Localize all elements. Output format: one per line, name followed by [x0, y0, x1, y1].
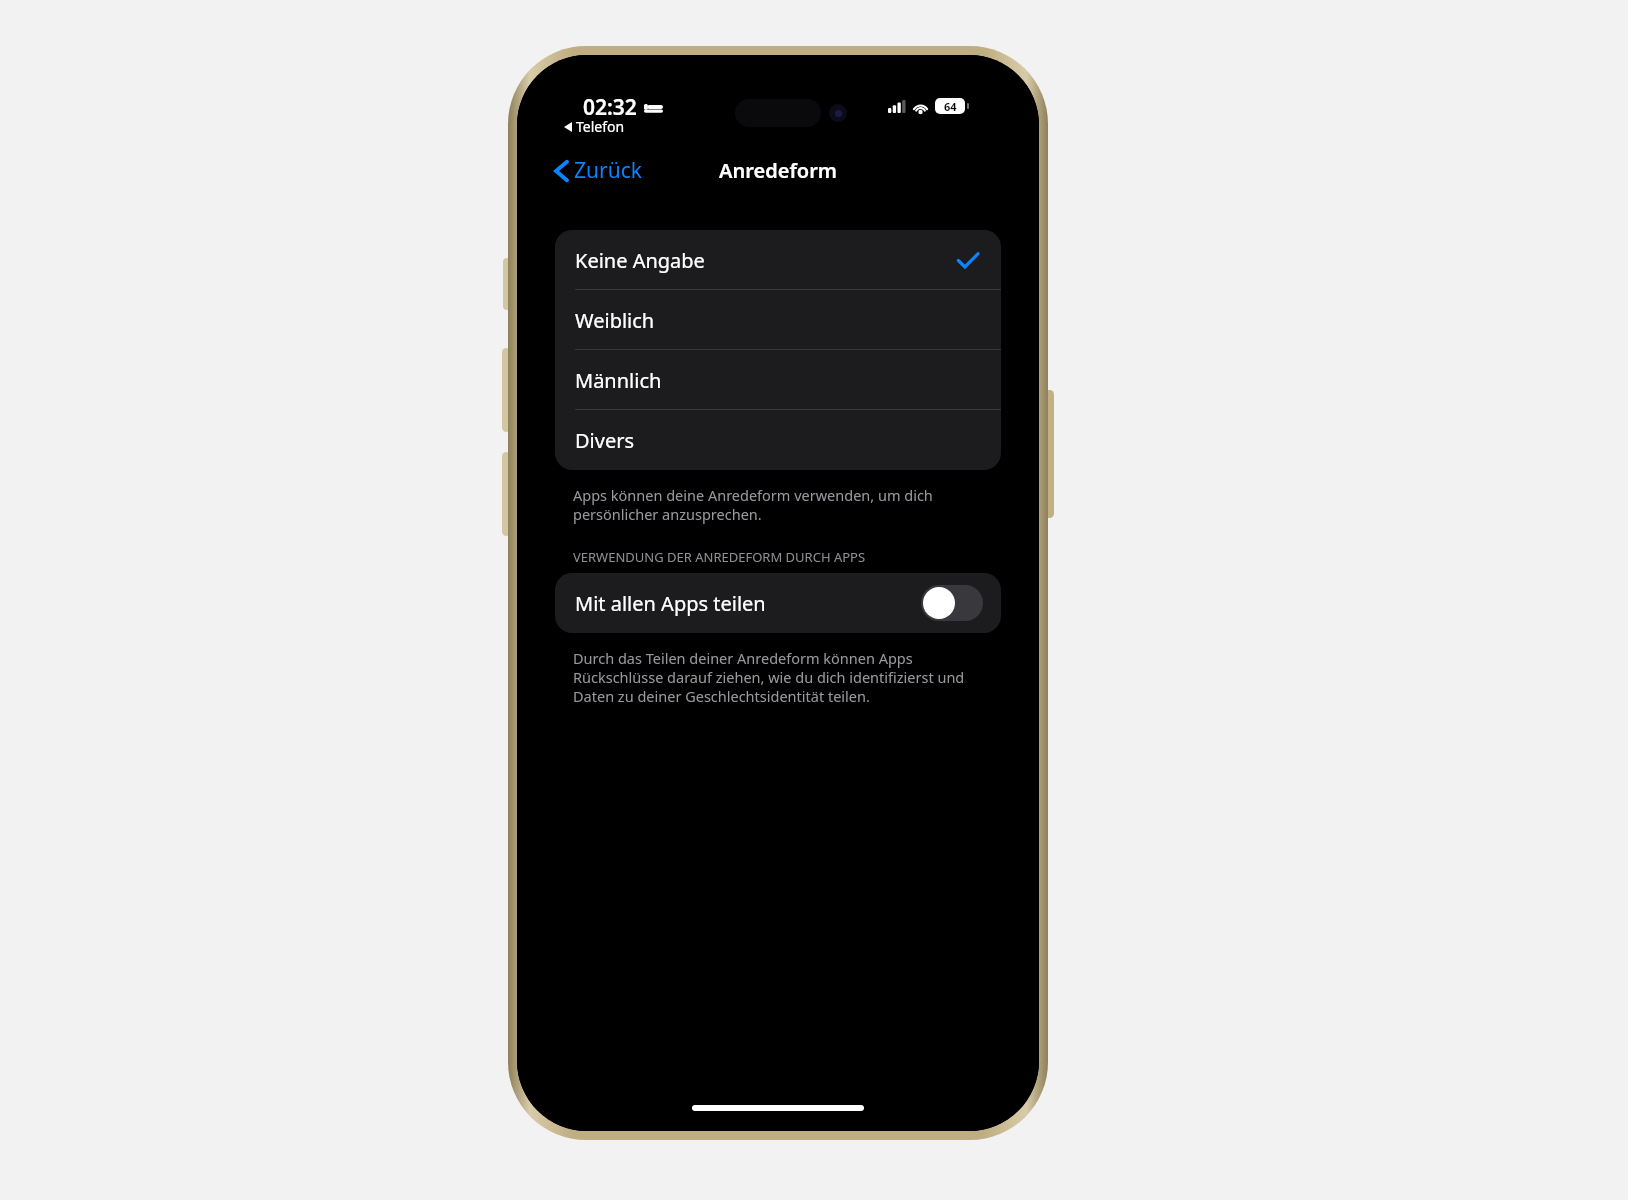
staticText: Mit allen Apps teilen — [575, 590, 766, 617]
staticText: VERWENDUNG DER ANREDEFORM DURCH APPS — [573, 548, 866, 566]
staticText: Anredeform — [719, 157, 838, 184]
button[interactable]: Keine Angabe — [555, 230, 1001, 290]
button[interactable]: Divers — [555, 410, 1001, 470]
staticText: Apps können deine Anredeform verwenden, … — [573, 485, 933, 524]
button[interactable]: Zurück — [551, 152, 646, 189]
staticText: Divers — [575, 427, 635, 454]
staticText: 64 — [944, 99, 957, 114]
button[interactable]: Weiblich — [555, 290, 1001, 350]
staticText: Männlich — [575, 367, 662, 394]
staticText: Keine Angabe — [575, 247, 705, 274]
staticText: Durch das Teilen deiner Anredeform könne… — [573, 648, 965, 706]
staticText: 02:32 — [583, 93, 637, 122]
staticText: Zurück — [574, 156, 642, 185]
staticText: Weiblich — [575, 307, 655, 334]
button[interactable]: Mit allen Apps teilen — [555, 573, 1001, 633]
button[interactable]: Mit allen Apps teilen umschalten — [921, 585, 983, 621]
button[interactable]: Männlich — [555, 350, 1001, 410]
staticText: Telefon — [576, 117, 625, 136]
